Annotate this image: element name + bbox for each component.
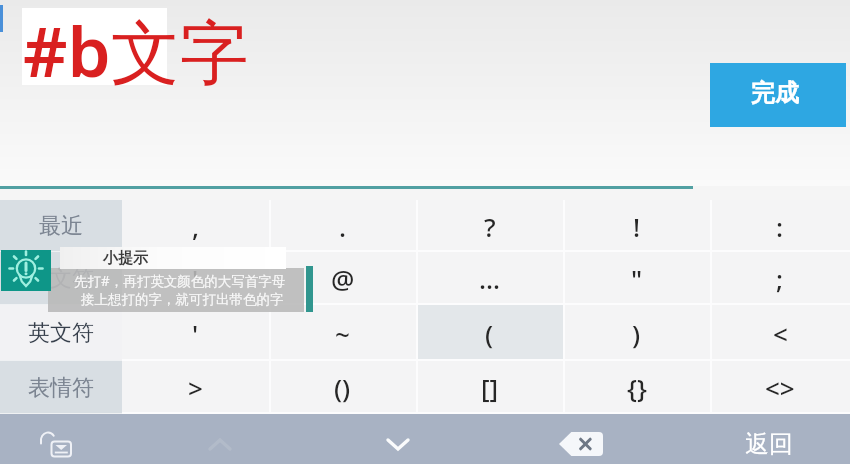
button[interactable]: ' [122,305,269,361]
button[interactable]: <> [710,361,850,414]
staticText: 小提示 [103,249,148,268]
button[interactable]: . [269,200,416,252]
button[interactable]: [] [416,361,563,414]
button[interactable]: () [269,361,416,414]
staticText: ! [633,209,641,244]
button[interactable]: 英文符 [0,305,122,361]
staticText: : [776,209,784,244]
button[interactable]: {} [563,361,710,414]
staticText: ~ [335,316,350,351]
button[interactable]: ' [122,252,269,305]
button[interactable]: 最近 [0,200,122,252]
button[interactable]: 表情符 [0,361,122,414]
staticText: 接上想打的字，就可打出带色的字 [81,291,284,308]
staticText: 完成 [751,78,799,108]
button[interactable]: 中文符 [0,252,122,305]
staticText: " [631,261,643,296]
button[interactable]: Keyboard settings [33,428,79,460]
button[interactable]: < [710,305,850,361]
staticText: #b文字 [23,3,249,97]
button[interactable]: ) [563,305,710,361]
button[interactable]: 完成 [710,63,846,127]
staticText: 中文符 [28,265,94,293]
button[interactable]: ? [416,200,563,252]
button[interactable]: ; [710,252,850,305]
button[interactable]: ( [416,305,563,361]
staticText: ; [776,261,784,296]
button[interactable]: ~ [269,305,416,361]
button[interactable]: … [416,252,563,305]
staticText: () [334,370,351,405]
staticText: ' [192,316,199,351]
staticText: … [479,261,501,296]
staticText: < [773,316,788,351]
staticText: 最近 [39,212,83,240]
button[interactable]: , [122,200,269,252]
button[interactable]: : [710,200,850,252]
staticText: ( [485,316,494,351]
staticText: ? [484,209,496,244]
staticText: , [192,209,200,244]
staticText: > [188,370,203,405]
staticText: <> [765,370,795,405]
staticText: 表情符 [28,374,94,402]
button[interactable]: 返回 [727,428,811,460]
staticText: . [339,209,347,244]
staticText: @ [331,261,355,296]
button[interactable]: @ [269,252,416,305]
staticText: ' [192,261,199,296]
button[interactable]: ! [563,200,710,252]
button[interactable]: Next page [375,428,421,460]
button[interactable]: > [122,361,269,414]
staticText: ) [632,316,641,351]
button[interactable]: Backspace [558,428,604,460]
button[interactable]: " [563,252,710,305]
staticText: 先打#，再打英文颜色的大写首字母 [74,272,286,290]
staticText: 返回 [745,429,793,459]
staticText: [] [481,370,499,405]
staticText: 英文符 [28,319,94,347]
staticText: {} [627,370,647,405]
